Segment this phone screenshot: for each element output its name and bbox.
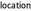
staticText: location: [0, 0, 31, 11]
